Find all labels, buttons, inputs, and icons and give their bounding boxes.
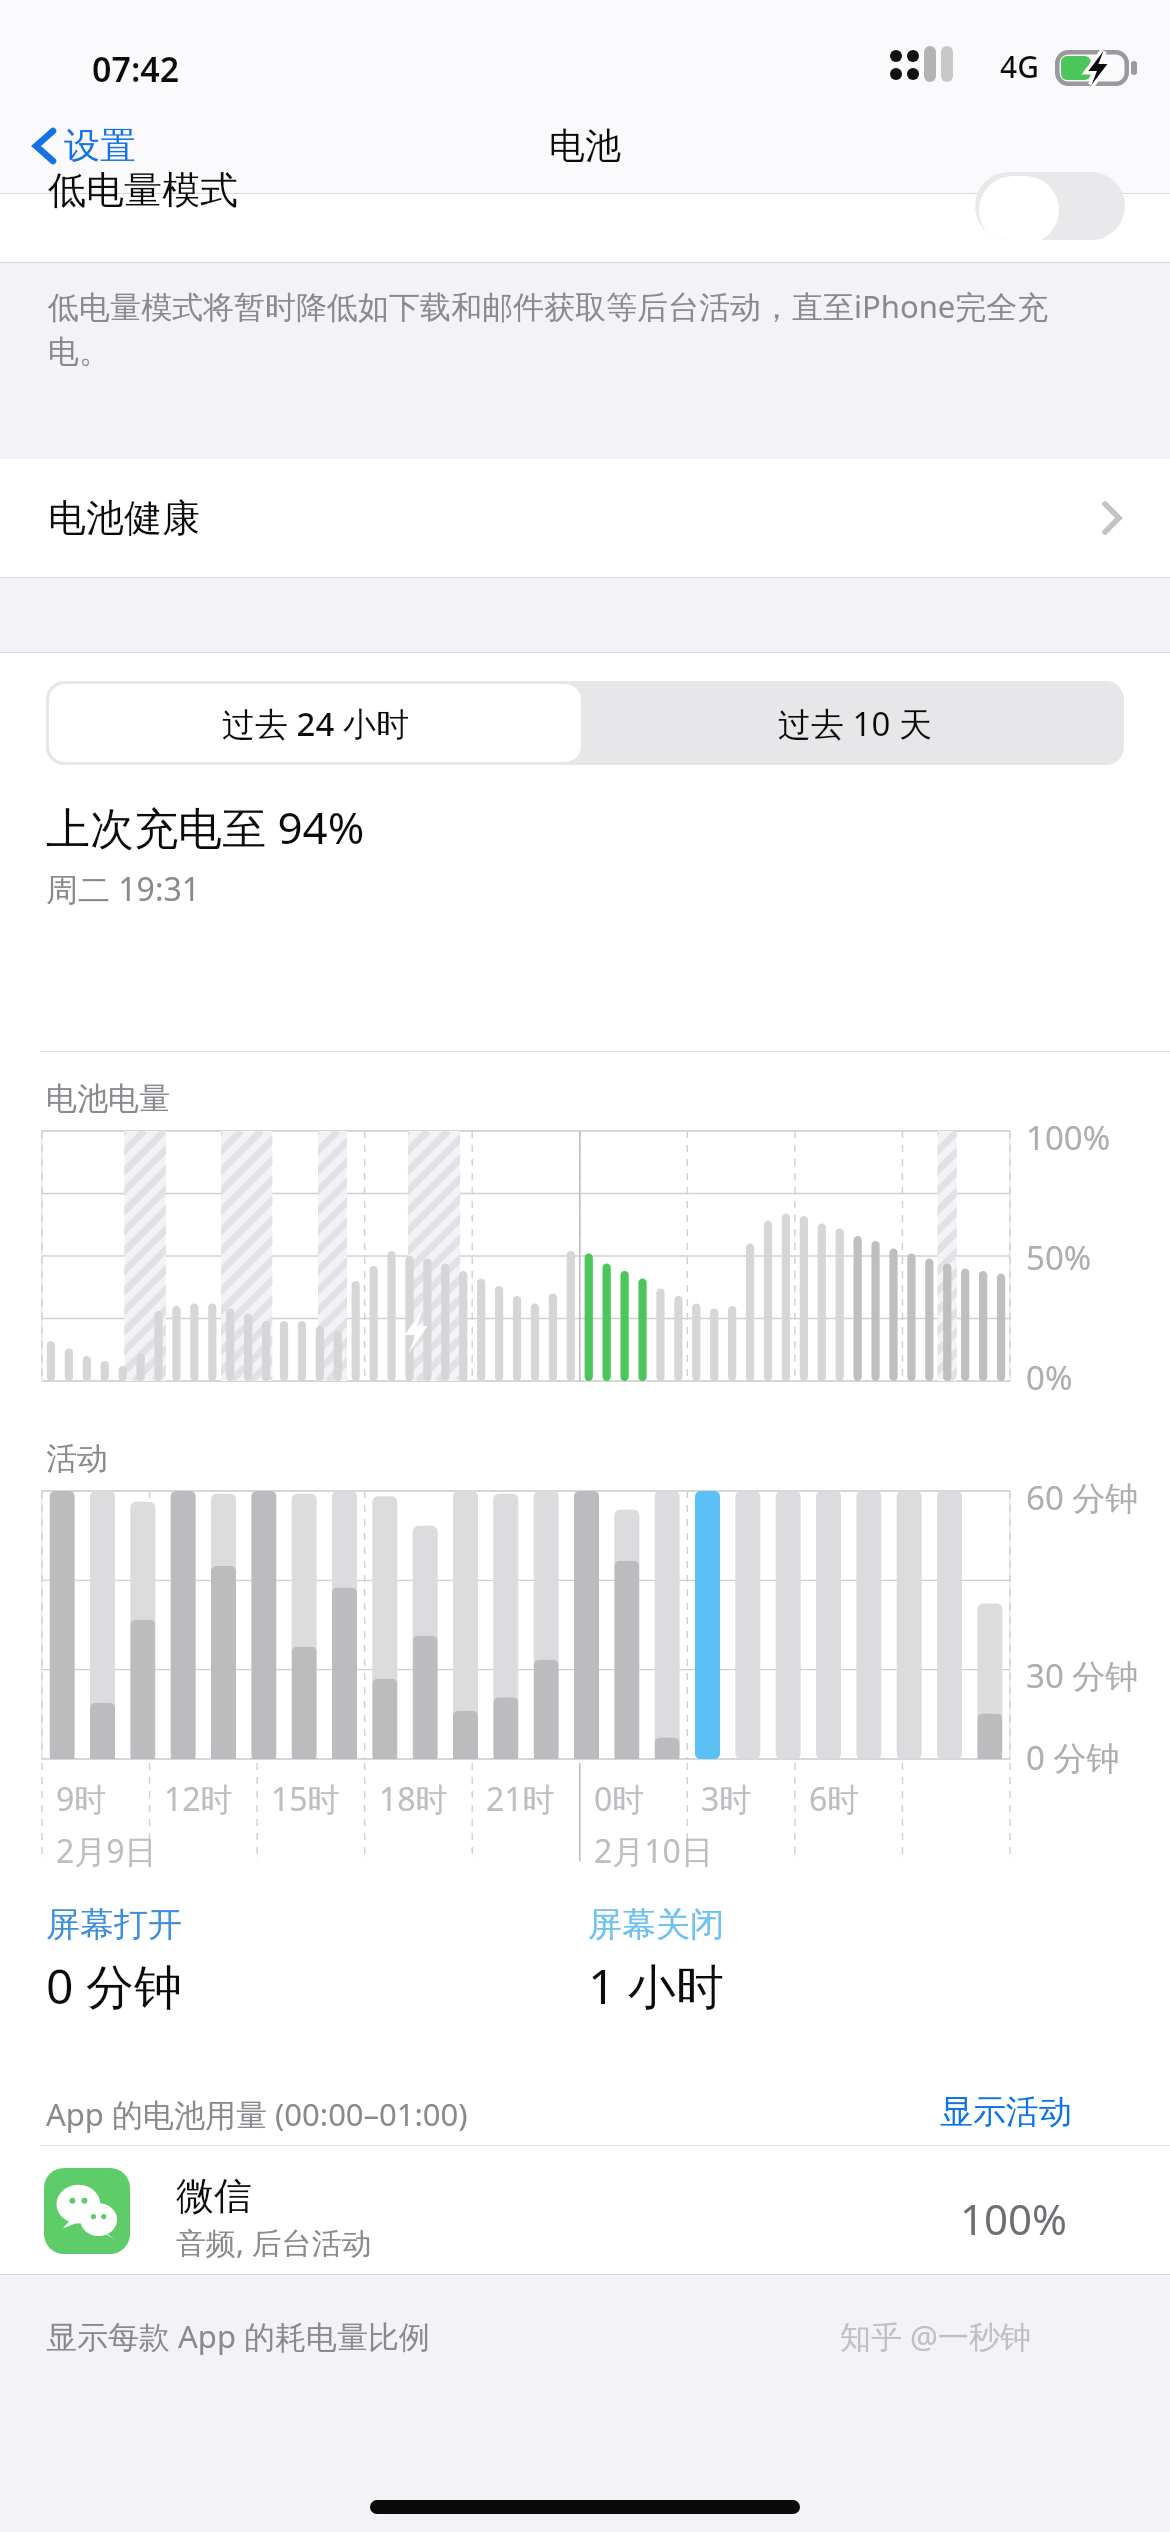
staticText: 屏幕关闭 xyxy=(588,1903,724,1946)
button[interactable]: 过去 10 天 xyxy=(586,681,1124,765)
button[interactable]: 电池健康 xyxy=(0,459,1170,577)
staticText: 12时 xyxy=(164,1777,233,1821)
staticText: 3时 xyxy=(701,1777,752,1821)
button[interactable]: 过去 24 小时 xyxy=(49,684,581,762)
staticText: 60 分钟 xyxy=(1026,1475,1139,1520)
staticText: 显示每款 App 的耗电量比例 xyxy=(46,2315,431,2357)
staticText: App 的电池用量 (00:00–01:00) xyxy=(46,2093,468,2135)
staticText: 过去 24 小时 xyxy=(222,701,409,746)
staticText: 上次充电至 94% xyxy=(46,797,365,857)
staticText: 6时 xyxy=(809,1777,860,1821)
staticText: 21时 xyxy=(486,1777,555,1821)
staticText: 周二 19:31 xyxy=(46,867,201,911)
staticText: 100% xyxy=(960,2190,1067,2247)
staticText: 音频, 后台活动 xyxy=(176,2222,372,2263)
staticText: 电池 xyxy=(549,123,621,168)
staticText: 100% xyxy=(1026,1115,1111,1160)
staticText: 4G xyxy=(1000,46,1039,87)
staticText: 9时 xyxy=(56,1777,107,1821)
staticText: 低电量模式将暂时降低如下载和邮件获取等后台活动，直至iPhone完全充电。 xyxy=(48,285,1068,371)
staticText: 知乎 @一秒钟 xyxy=(840,2315,1031,2357)
staticText: 07:42 xyxy=(92,46,180,92)
staticText: 30 分钟 xyxy=(1026,1653,1139,1698)
staticText: 电池健康 xyxy=(48,494,200,542)
staticText: 电池电量 xyxy=(46,1079,170,1118)
staticText: 2月10日 xyxy=(594,1829,713,1873)
staticText: 15时 xyxy=(271,1777,340,1821)
staticText: 1 小时 xyxy=(588,1953,724,2019)
button[interactable]: 低电量模式 xyxy=(0,194,1170,262)
staticText: 0 分钟 xyxy=(1026,1735,1120,1780)
staticText: 显示活动 xyxy=(940,2091,1072,2133)
staticText: 过去 10 天 xyxy=(778,701,932,746)
staticText: 0% xyxy=(1026,1355,1073,1400)
button[interactable]: 微信 xyxy=(0,2146,1170,2274)
staticText: 0时 xyxy=(594,1777,645,1821)
staticText: 微信 xyxy=(176,2172,252,2220)
staticText: 屏幕打开 xyxy=(46,1903,182,1946)
staticText: 2月9日 xyxy=(56,1829,157,1873)
staticText: 低电量模式 xyxy=(48,166,238,214)
staticText: 50% xyxy=(1026,1235,1092,1280)
staticText: 0 分钟 xyxy=(46,1953,182,2019)
button[interactable]: 显示活动 xyxy=(930,2081,1082,2143)
staticText: 18时 xyxy=(379,1777,448,1821)
button[interactable]: 设置 xyxy=(24,115,144,176)
staticText: 活动 xyxy=(46,1439,108,1478)
staticText: 设置 xyxy=(64,123,136,168)
